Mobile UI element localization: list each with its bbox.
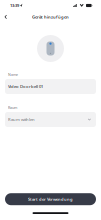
staticText: Raum wählen [8, 117, 35, 122]
button[interactable]: Start der Verwendung [5, 193, 96, 205]
button[interactable]: Zurück [0, 11, 12, 23]
staticText: 13:39 [10, 3, 19, 8]
staticText: Video Doorbell 01 [8, 84, 43, 89]
staticText: Start der Verwendung [28, 196, 73, 202]
staticText: Gerät hinzufügen [32, 14, 69, 20]
staticText: Name [8, 72, 18, 77]
staticText: Raum [8, 105, 17, 110]
